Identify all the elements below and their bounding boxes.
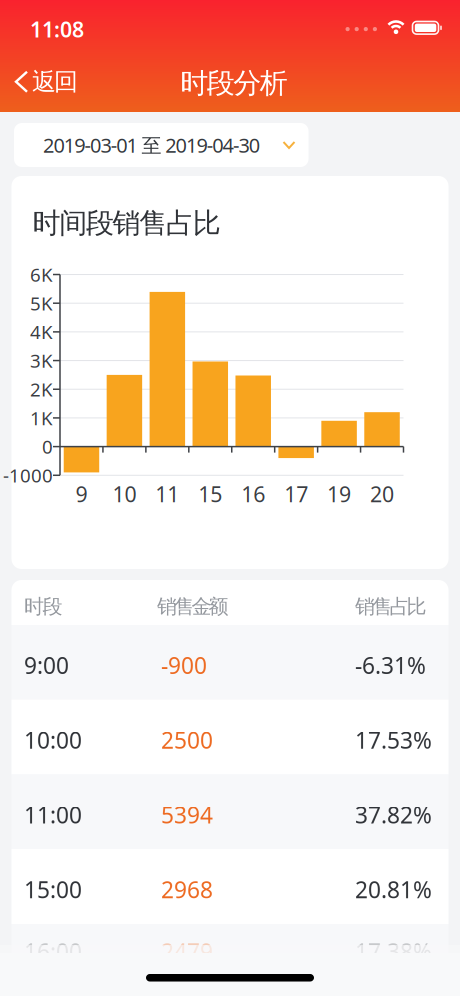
staticText: -900 — [161, 650, 207, 680]
staticText: 4K — [30, 319, 53, 344]
staticText: 9:00 — [24, 650, 69, 680]
staticText: 2479 — [161, 936, 213, 966]
staticText: 19 — [327, 480, 351, 508]
staticText: 15 — [198, 480, 222, 508]
staticText: 2500 — [161, 725, 213, 755]
staticText: 20.81% — [355, 874, 432, 904]
staticText: 2019-03-01 至 2019-04-30 — [43, 132, 260, 158]
staticText: 15:00 — [24, 874, 82, 904]
staticText: 1K — [30, 405, 53, 430]
staticText: 时段分析 — [180, 66, 288, 100]
button[interactable]: 2019-03-01 至 2019-04-30 — [14, 123, 308, 167]
staticText: 2K — [30, 377, 53, 402]
staticText: 16:00 — [24, 936, 82, 966]
staticText: 返回 — [32, 67, 78, 96]
staticText: 11:08 — [30, 15, 84, 43]
staticText: 17.38% — [355, 936, 432, 966]
staticText: 销售占比 — [355, 594, 427, 619]
staticText: 11 — [155, 480, 179, 508]
button[interactable]: 返回 — [16, 67, 78, 96]
staticText: 10 — [112, 480, 136, 508]
staticText: 10:00 — [24, 725, 82, 755]
staticText: -6.31% — [355, 650, 426, 680]
staticText: 5K — [30, 291, 53, 316]
staticText: 6K — [30, 262, 53, 287]
staticText: 时间段销售占比 — [32, 206, 221, 240]
staticText: 17 — [284, 480, 308, 508]
staticText: 37.82% — [355, 800, 432, 830]
staticText: 5394 — [161, 800, 213, 830]
staticText: 销售金额 — [157, 594, 229, 619]
staticText: 9 — [75, 480, 87, 508]
staticText: 17.53% — [355, 725, 432, 755]
staticText: 11:00 — [24, 800, 82, 830]
staticText: -1000 — [3, 463, 53, 488]
staticText: 16 — [241, 480, 265, 508]
staticText: 时段 — [24, 594, 62, 619]
staticText: 0 — [42, 434, 53, 459]
staticText: 2968 — [161, 874, 213, 904]
staticText: 3K — [30, 348, 53, 373]
staticText: 20 — [370, 480, 394, 508]
